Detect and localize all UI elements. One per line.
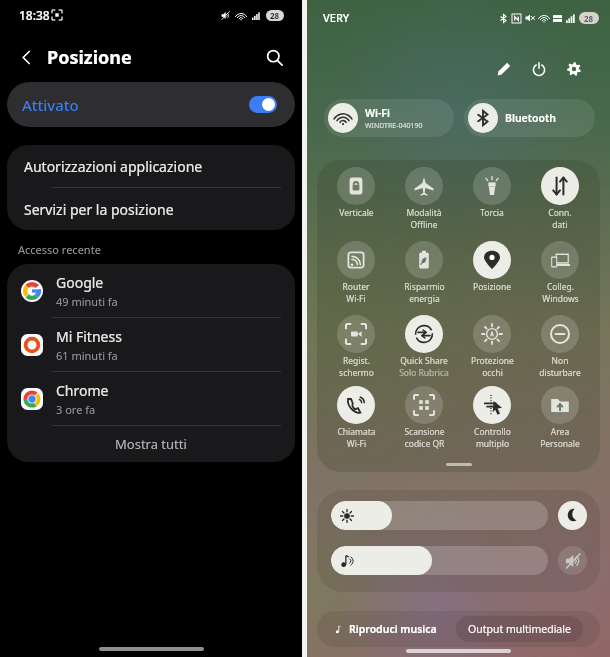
staticText: Controllo multiplo [474,426,511,450]
button[interactable]: Attivato [7,82,295,127]
button[interactable]: Area Personale [528,386,592,450]
staticText: Torcia [480,207,504,219]
staticText: 18:38 [19,7,50,23]
button[interactable]: Chrome [7,372,295,425]
button[interactable]: Brightness [331,501,548,530]
staticText: 61 minuti fa [56,348,118,363]
button[interactable]: Bluetooth [464,99,595,137]
button[interactable]: Mostra tutti [7,426,295,462]
button[interactable]: Wi-Fi [324,99,454,137]
button[interactable]: Mute [558,546,587,575]
staticText: Colleg. Windows [542,281,579,305]
staticText: WINDTRE-040190 [365,121,423,131]
staticText: Non disturbare [539,355,581,379]
staticText: 28 [584,13,594,24]
staticText: Attivato [22,95,79,115]
button[interactable]: Power [526,56,552,82]
staticText: Verticale [339,207,374,219]
button[interactable]: Edit [491,56,517,82]
staticText: Posizione [47,45,132,70]
staticText: Quick Share [400,355,448,367]
button[interactable]: Scansione codice QR [392,386,456,450]
button[interactable]: Settings [561,56,587,82]
button[interactable]: Verticale [324,167,388,219]
staticText: Chrome [56,381,109,400]
staticText: Regist. schermo [339,355,374,379]
button[interactable]: Volume [331,546,548,575]
staticText: Modalità Offline [406,207,442,231]
button[interactable]: Router Wi-Fi [324,241,388,305]
staticText: Scansione codice QR [404,426,445,450]
staticText: Area Personale [540,426,580,450]
staticText: Mostra tutti [115,435,187,453]
staticText: Mi Fitness [56,327,122,346]
staticText: Servizi per la posizione [24,200,174,219]
staticText: Conn. dati [548,207,572,231]
button[interactable]: Conn. dati [528,167,592,231]
button[interactable]: Risparmio energia [392,241,456,305]
button[interactable]: Posizione [460,241,524,293]
button[interactable]: Regist. schermo [324,315,388,379]
button[interactable]: Quick Share [392,315,456,379]
button[interactable]: Google [7,264,295,317]
staticText: Wi-Fi [365,106,390,120]
button[interactable]: Riproduci musica [317,611,456,647]
staticText: Protezione occhi [471,355,514,379]
staticText: Google [56,273,104,292]
staticText: Riproduci musica [349,622,437,636]
button[interactable]: Protezione occhi [460,315,524,379]
staticText: Chiamata Wi-Fi [337,426,376,450]
button[interactable]: Servizi per la posizione [7,188,295,230]
button[interactable]: Output multimediale [456,616,583,642]
button[interactable]: Chiamata Wi-Fi [324,386,388,450]
button[interactable]: Non disturbare [528,315,592,379]
staticText: Posizione [473,281,511,293]
button[interactable]: Back [10,41,42,73]
staticText: Router Wi-Fi [342,281,370,305]
staticText: 28 [270,10,280,21]
button[interactable]: Autorizzazioni applicazione [7,145,295,187]
staticText: 3 ore fa [56,402,96,417]
staticText: Accesso recente [18,242,101,257]
button[interactable]: Torcia [460,167,524,219]
staticText: Risparmio energia [404,281,445,305]
staticText: Autorizzazioni applicazione [24,157,203,176]
button[interactable]: Controllo multiplo [460,386,524,450]
staticText: Bluetooth [505,111,556,125]
button[interactable]: Toggle location [249,96,277,113]
staticText: 49 minuti fa [56,294,118,309]
staticText: VERY [323,10,350,25]
button[interactable]: Search [258,41,290,73]
button[interactable]: Colleg. Windows [528,241,592,305]
button[interactable]: Mi Fitness [7,318,295,371]
staticText: Solo Rubrica [399,367,449,379]
button[interactable]: Night mode [558,501,587,530]
staticText: Output multimediale [468,622,571,636]
button[interactable]: Modalità Offline [392,167,456,231]
